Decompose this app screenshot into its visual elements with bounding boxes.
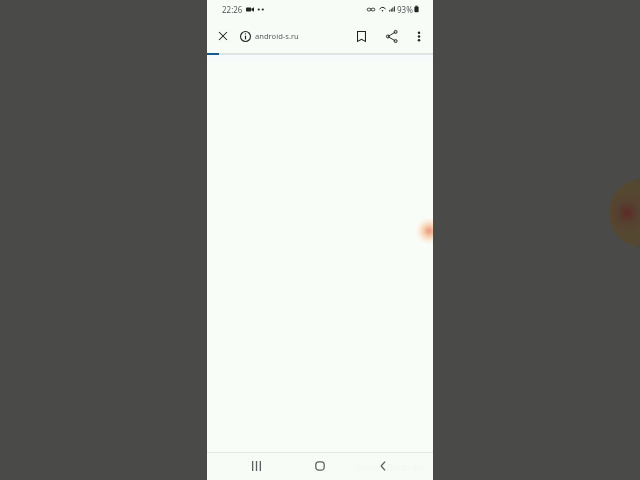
button[interactable]: Close — [212, 25, 234, 47]
button[interactable]: android-s.ru — [240, 20, 351, 52]
button[interactable]: Share — [380, 22, 404, 50]
button[interactable]: Home — [288, 453, 351, 478]
button[interactable]: Recent apps — [225, 453, 288, 478]
button[interactable]: Bookmark — [351, 22, 377, 50]
staticText: 22:26 — [222, 4, 243, 15]
staticText: 93% — [397, 4, 413, 15]
staticText: android-s.ru — [255, 31, 299, 41]
button[interactable]: More options — [408, 22, 430, 50]
staticText: Screen Recorder — [356, 461, 426, 473]
button[interactable]: Back — [351, 453, 414, 478]
